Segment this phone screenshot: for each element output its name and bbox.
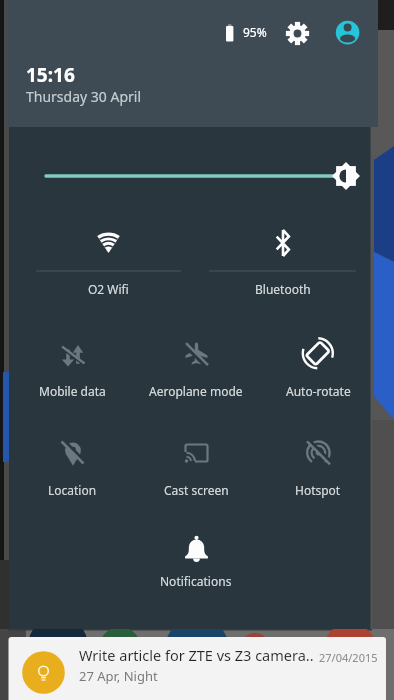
button[interactable]	[8, 637, 386, 700]
staticText: Thursday 30 April	[26, 87, 142, 106]
staticText: 95%	[243, 24, 267, 40]
button[interactable]	[141, 430, 251, 500]
button[interactable]	[30, 218, 186, 298]
staticText: 27/04/2015	[319, 650, 378, 665]
staticText: Notifications	[160, 573, 232, 589]
button[interactable]	[147, 525, 247, 590]
button[interactable]	[206, 218, 362, 298]
button[interactable]	[141, 330, 251, 400]
staticText: Cast screen	[164, 482, 229, 498]
button[interactable]	[263, 330, 373, 400]
button[interactable]	[24, 152, 368, 200]
staticText: Hotspot	[295, 482, 341, 498]
staticText: Auto-rotate	[286, 383, 351, 399]
staticText: O2 Wifi	[88, 281, 129, 297]
staticText: Location	[48, 482, 97, 498]
button[interactable]	[263, 430, 373, 500]
staticText: 15:16	[26, 62, 75, 88]
staticText: Write article for ZTE vs Z3 camera..	[79, 645, 314, 665]
button[interactable]	[284, 19, 312, 47]
button[interactable]	[18, 330, 128, 400]
button[interactable]	[331, 16, 364, 49]
staticText: Bluetooth	[255, 281, 311, 297]
staticText: Mobile data	[39, 383, 106, 399]
staticText: 27 Apr, Night	[79, 667, 158, 685]
staticText: Aeroplane mode	[149, 383, 243, 399]
button[interactable]	[18, 430, 128, 500]
